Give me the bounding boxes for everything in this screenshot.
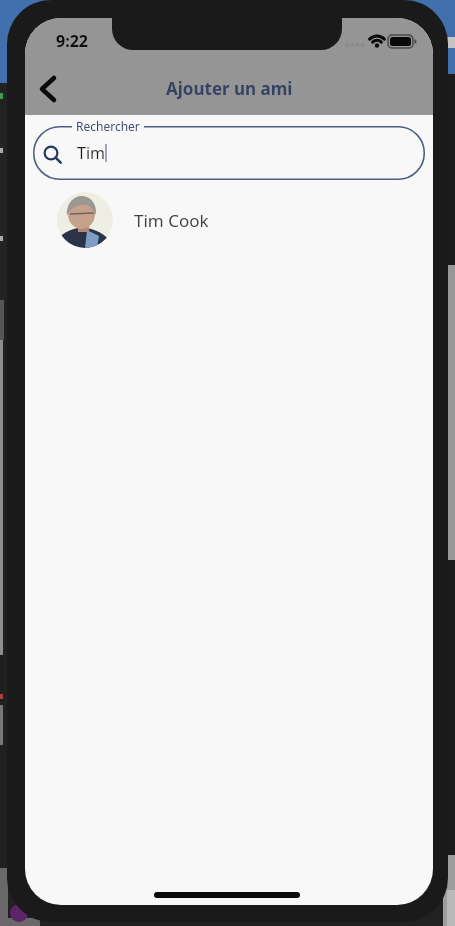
staticText: Ajouter un ami — [166, 77, 293, 100]
button[interactable] — [33, 67, 77, 111]
button[interactable]: Tim Cook — [25, 192, 433, 248]
staticText: Tim Cook — [134, 209, 209, 232]
staticText: 9:22 — [56, 30, 88, 52]
button[interactable]: Tim — [33, 126, 425, 180]
staticText: Tim — [77, 142, 105, 164]
staticText: Rechercher — [76, 118, 140, 134]
